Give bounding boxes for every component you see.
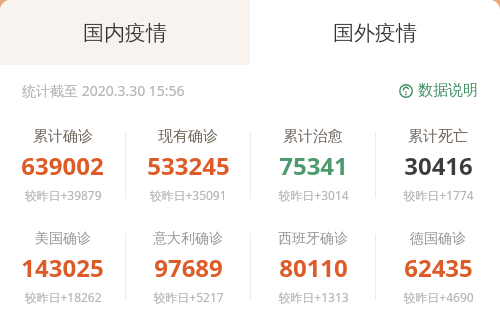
staticText: 较昨日+1774 [403,187,474,203]
staticText: 533245 [147,149,230,182]
staticText: 较昨日+35091 [149,187,227,203]
button[interactable]: 美国确诊 [0,230,125,305]
button[interactable]: 现有确诊 [126,127,250,203]
button[interactable]: 国内疫情 [0,0,250,65]
staticText: 143025 [21,251,104,284]
button[interactable]: 国外疫情 [250,0,500,65]
button[interactable]: 累计治愈 [251,127,375,203]
button[interactable]: 累计确诊 [0,127,125,203]
staticText: 西班牙确诊 [278,230,348,248]
button[interactable]: 西班牙确诊 [251,230,375,305]
staticText: 现有确诊 [158,127,218,146]
button[interactable]: 数据说明 [399,81,478,100]
staticText: 62435 [404,251,473,284]
staticText: 德国确诊 [410,230,466,248]
staticText: 数据说明 [418,81,478,100]
staticText: 较昨日+3014 [278,187,349,203]
staticText: 较昨日+5217 [153,289,224,305]
staticText: 75341 [279,149,348,182]
staticText: 30416 [404,149,473,182]
staticText: 较昨日+18262 [24,289,102,305]
staticText: 较昨日+1313 [278,289,349,305]
staticText: 意大利确诊 [153,230,223,248]
button[interactable]: 德国确诊 [376,230,500,305]
staticText: 80110 [279,251,348,284]
button[interactable]: 意大利确诊 [126,230,250,305]
staticText: 较昨日+39879 [24,187,102,203]
staticText: 97689 [154,251,223,284]
staticText: 639002 [21,149,104,182]
staticText: 国内疫情 [83,20,167,46]
staticText: 较昨日+4690 [403,289,474,305]
staticText: 累计死亡 [408,127,468,146]
staticText: 美国确诊 [35,230,91,248]
staticText: 累计治愈 [283,127,343,146]
staticText: 累计确诊 [33,127,93,146]
button[interactable]: 累计死亡 [376,127,500,203]
staticText: 统计截至 2020.3.30 15:56 [22,81,185,100]
staticText: 国外疫情 [333,20,417,46]
